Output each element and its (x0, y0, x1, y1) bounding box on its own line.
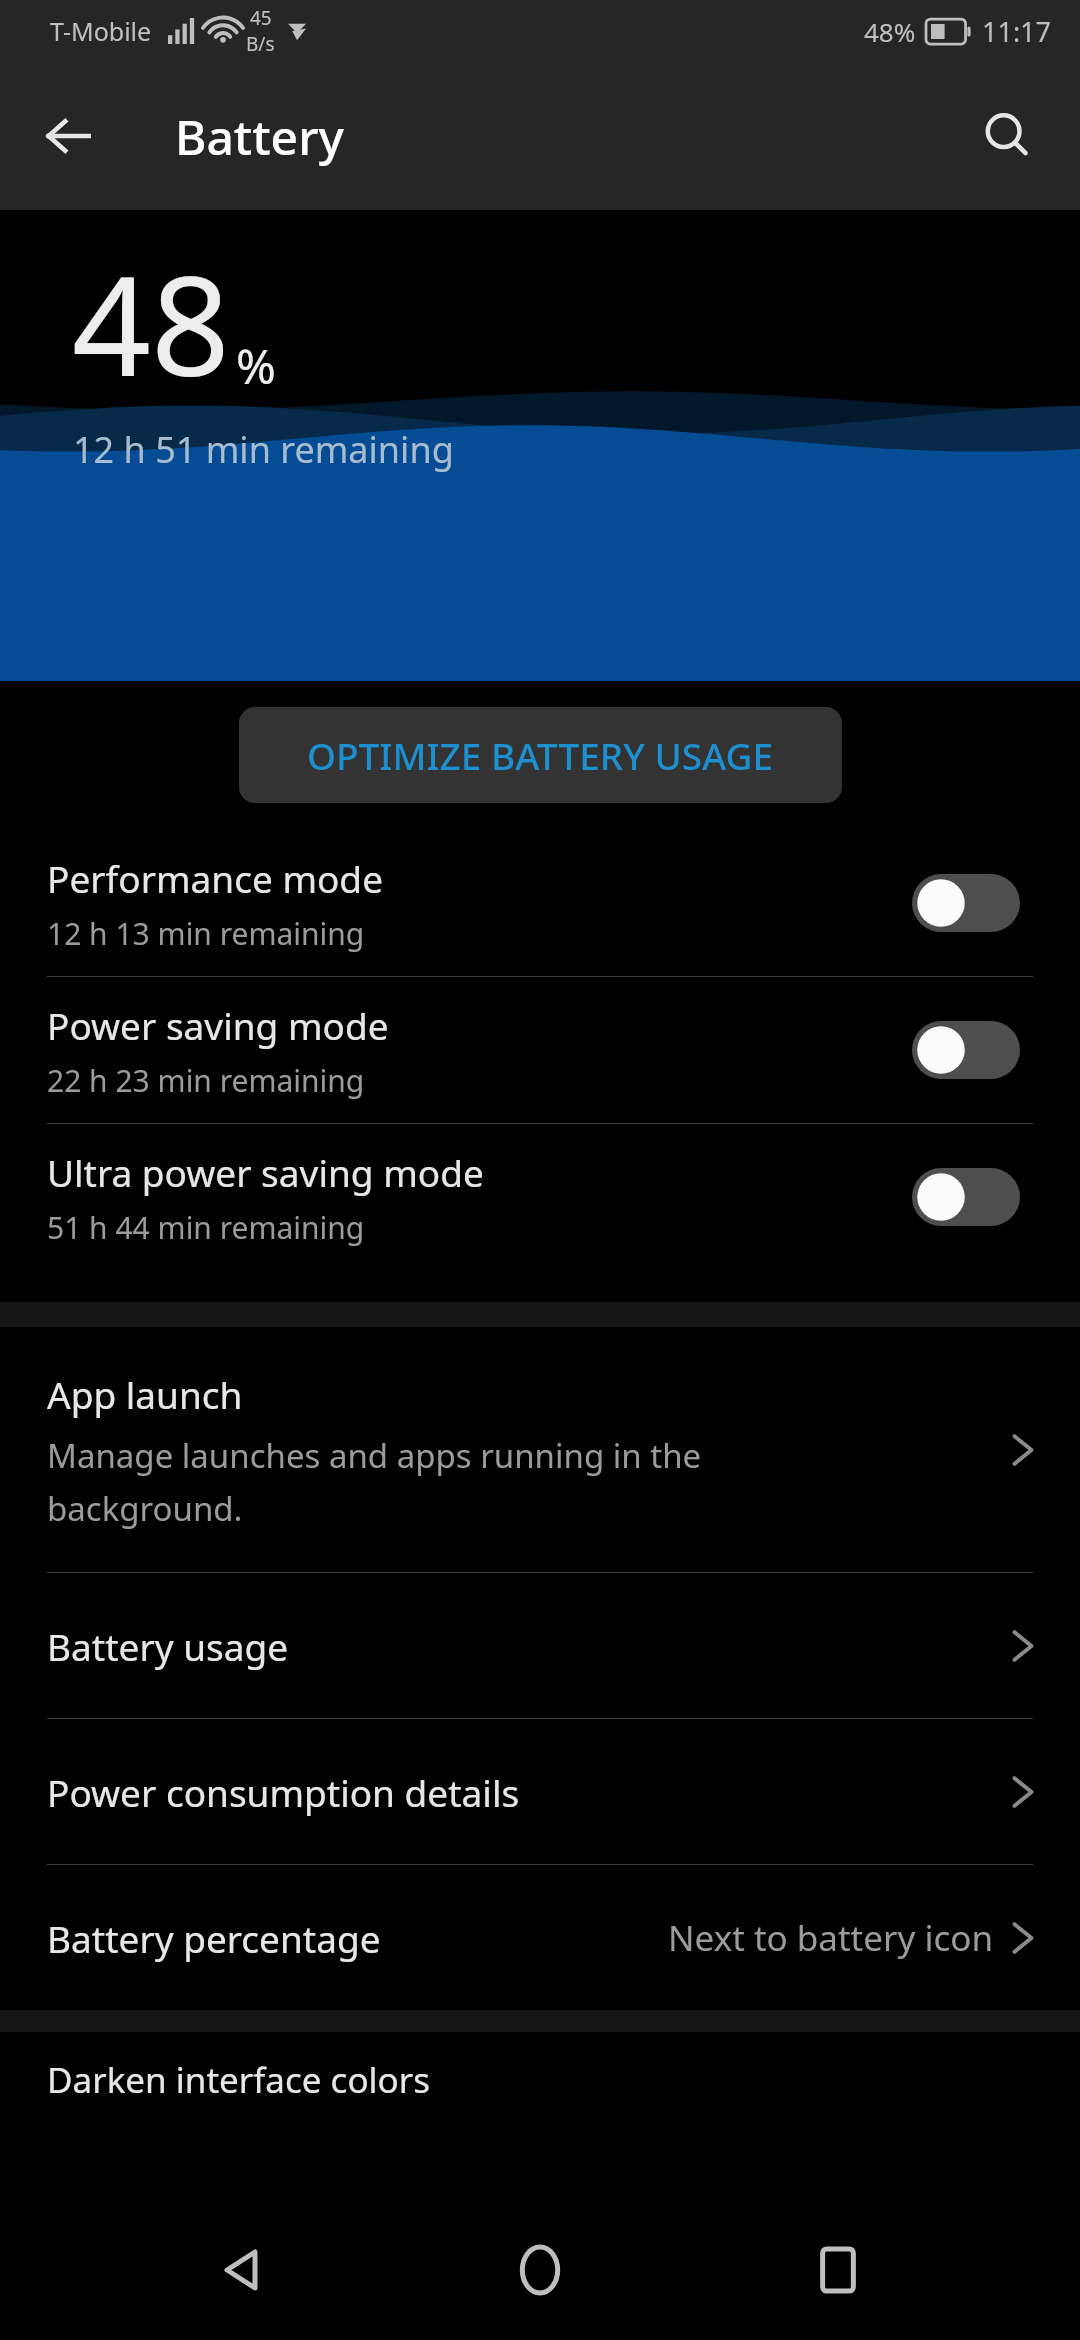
staticText: 12 h 13 min remaining (47, 913, 365, 954)
button[interactable]: OPTIMIZE BATTERY USAGE (239, 707, 842, 803)
staticText: Performance mode (47, 853, 383, 903)
staticText: background. (47, 1486, 243, 1531)
button[interactable]: App launch (0, 1327, 1080, 1572)
staticText: 22 h 23 min remaining (47, 1060, 365, 1101)
staticText: 45 (250, 5, 272, 31)
staticText: Battery usage (47, 1621, 1006, 1671)
button[interactable]: Power consumption details (0, 1719, 1080, 1864)
staticText: Power consumption details (47, 1767, 1006, 1817)
button[interactable]: Power saving mode (0, 977, 1080, 1123)
staticText: OPTIMIZE BATTERY USAGE (307, 730, 774, 780)
staticText: 48 (72, 228, 230, 416)
button[interactable]: Back (28, 96, 108, 176)
staticText: B/s (246, 31, 275, 57)
staticText: 48% (864, 14, 916, 49)
staticText: 11:17 (982, 13, 1052, 50)
staticText: T-Mobile (50, 14, 152, 48)
staticText: Power saving mode (47, 1000, 389, 1050)
staticText: Ultra power saving mode (47, 1147, 484, 1197)
button[interactable]: Darken interface colors (0, 2032, 1080, 2128)
staticText: % (236, 333, 276, 398)
button[interactable]: Performance mode (0, 830, 1080, 976)
staticText: Battery (175, 104, 344, 169)
button[interactable]: Battery percentage (0, 1865, 1080, 2010)
button[interactable]: Recents (783, 2215, 893, 2325)
button[interactable]: Back (188, 2215, 298, 2325)
button[interactable]: Battery usage (0, 1573, 1080, 1718)
button[interactable]: Ultra power saving mode (0, 1124, 1080, 1270)
staticText: 12 h 51 min remaining (73, 425, 454, 474)
button[interactable]: Home (485, 2215, 595, 2325)
staticText: Manage launches and apps running in the (47, 1433, 702, 1478)
button[interactable]: Search (964, 93, 1050, 179)
staticText: Next to battery icon (668, 1914, 994, 1962)
staticText: 51 h 44 min remaining (47, 1207, 365, 1248)
staticText: Darken interface colors (47, 2056, 431, 2104)
staticText: App launch (47, 1369, 243, 1419)
staticText: Battery percentage (47, 1913, 668, 1963)
